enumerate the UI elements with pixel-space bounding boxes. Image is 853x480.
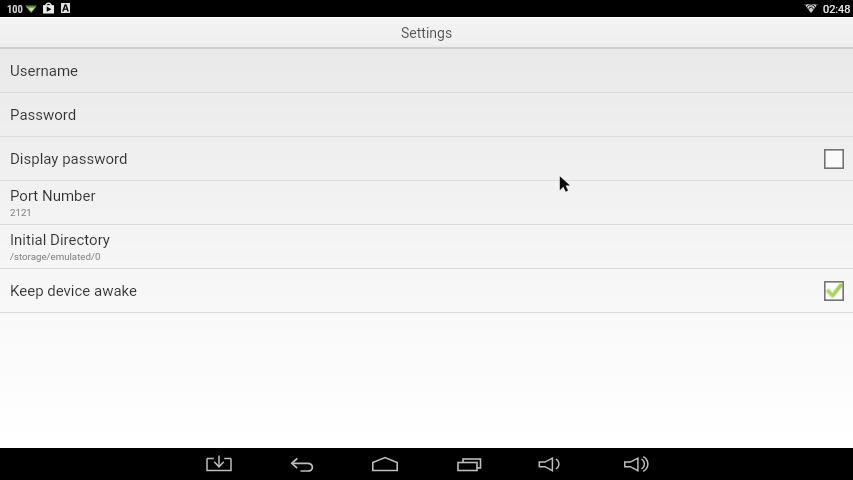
- button[interactable]: Display password: [0, 137, 853, 180]
- button[interactable]: Initial Directory: [0, 225, 853, 268]
- button[interactable]: Screenshot: [203, 448, 235, 480]
- staticText: 2121: [10, 207, 32, 218]
- staticText: Port Number: [10, 187, 96, 205]
- button[interactable]: Back: [286, 448, 318, 480]
- staticText: 02:48: [823, 3, 851, 16]
- staticText: Initial Directory: [10, 231, 110, 249]
- staticText: Username: [10, 62, 79, 80]
- button[interactable]: Checked checkbox: [824, 281, 844, 301]
- staticText: /storage/emulated/0: [10, 251, 101, 262]
- button[interactable]: Volume up: [618, 448, 650, 480]
- button[interactable]: Unchecked checkbox: [824, 149, 844, 169]
- button[interactable]: Home: [369, 448, 401, 480]
- button[interactable]: Port Number: [0, 181, 853, 224]
- button[interactable]: Username: [0, 49, 853, 92]
- staticText: 100: [7, 3, 23, 15]
- staticText: Password: [10, 106, 77, 124]
- staticText: Display password: [10, 150, 128, 168]
- button[interactable]: Keep device awake: [0, 269, 853, 312]
- button[interactable]: Password: [0, 93, 853, 136]
- button[interactable]: Volume down: [534, 448, 566, 480]
- button[interactable]: Recent apps: [453, 448, 485, 480]
- staticText: Keep device awake: [10, 282, 138, 300]
- staticText: Settings: [401, 25, 453, 41]
